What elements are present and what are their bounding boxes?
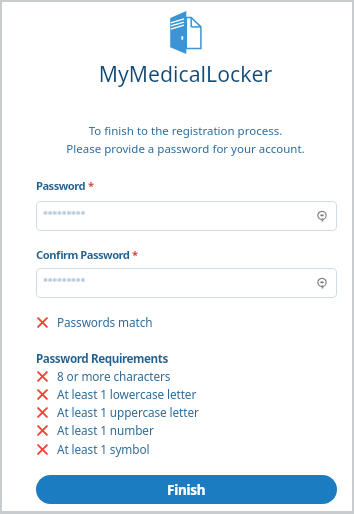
staticText: ✱✱✱✱✱✱✱✱✱ bbox=[43, 277, 86, 284]
staticText: Password bbox=[36, 178, 86, 193]
staticText: To finish to the registration process. bbox=[35, 123, 336, 139]
staticText: Password Requirements bbox=[36, 350, 168, 366]
staticText: MyMedicalLocker bbox=[35, 59, 336, 88]
staticText: At least 1 symbol bbox=[57, 441, 150, 457]
staticText: Please provide a password for your accou… bbox=[35, 141, 336, 157]
staticText: At least 1 uppercase letter bbox=[57, 404, 199, 420]
staticText: * bbox=[132, 247, 139, 262]
staticText: 8 or more characters bbox=[57, 368, 171, 384]
staticText: At least 1 lowercase letter bbox=[57, 386, 197, 402]
staticText: Finish bbox=[167, 481, 206, 499]
button[interactable]: Show password bbox=[314, 208, 330, 224]
staticText: Passwords match bbox=[57, 314, 153, 330]
button[interactable]: Show password bbox=[314, 275, 330, 291]
button[interactable]: Finish bbox=[36, 475, 337, 504]
staticText: * bbox=[88, 178, 95, 193]
staticText: At least 1 number bbox=[57, 422, 154, 438]
staticText: ✱✱✱✱✱✱✱✱✱ bbox=[43, 210, 86, 217]
button[interactable]: ✱✱✱✱✱✱✱✱✱ bbox=[36, 201, 337, 231]
staticText: Confirm Password bbox=[36, 247, 130, 262]
button[interactable]: ✱✱✱✱✱✱✱✱✱ bbox=[36, 268, 337, 298]
